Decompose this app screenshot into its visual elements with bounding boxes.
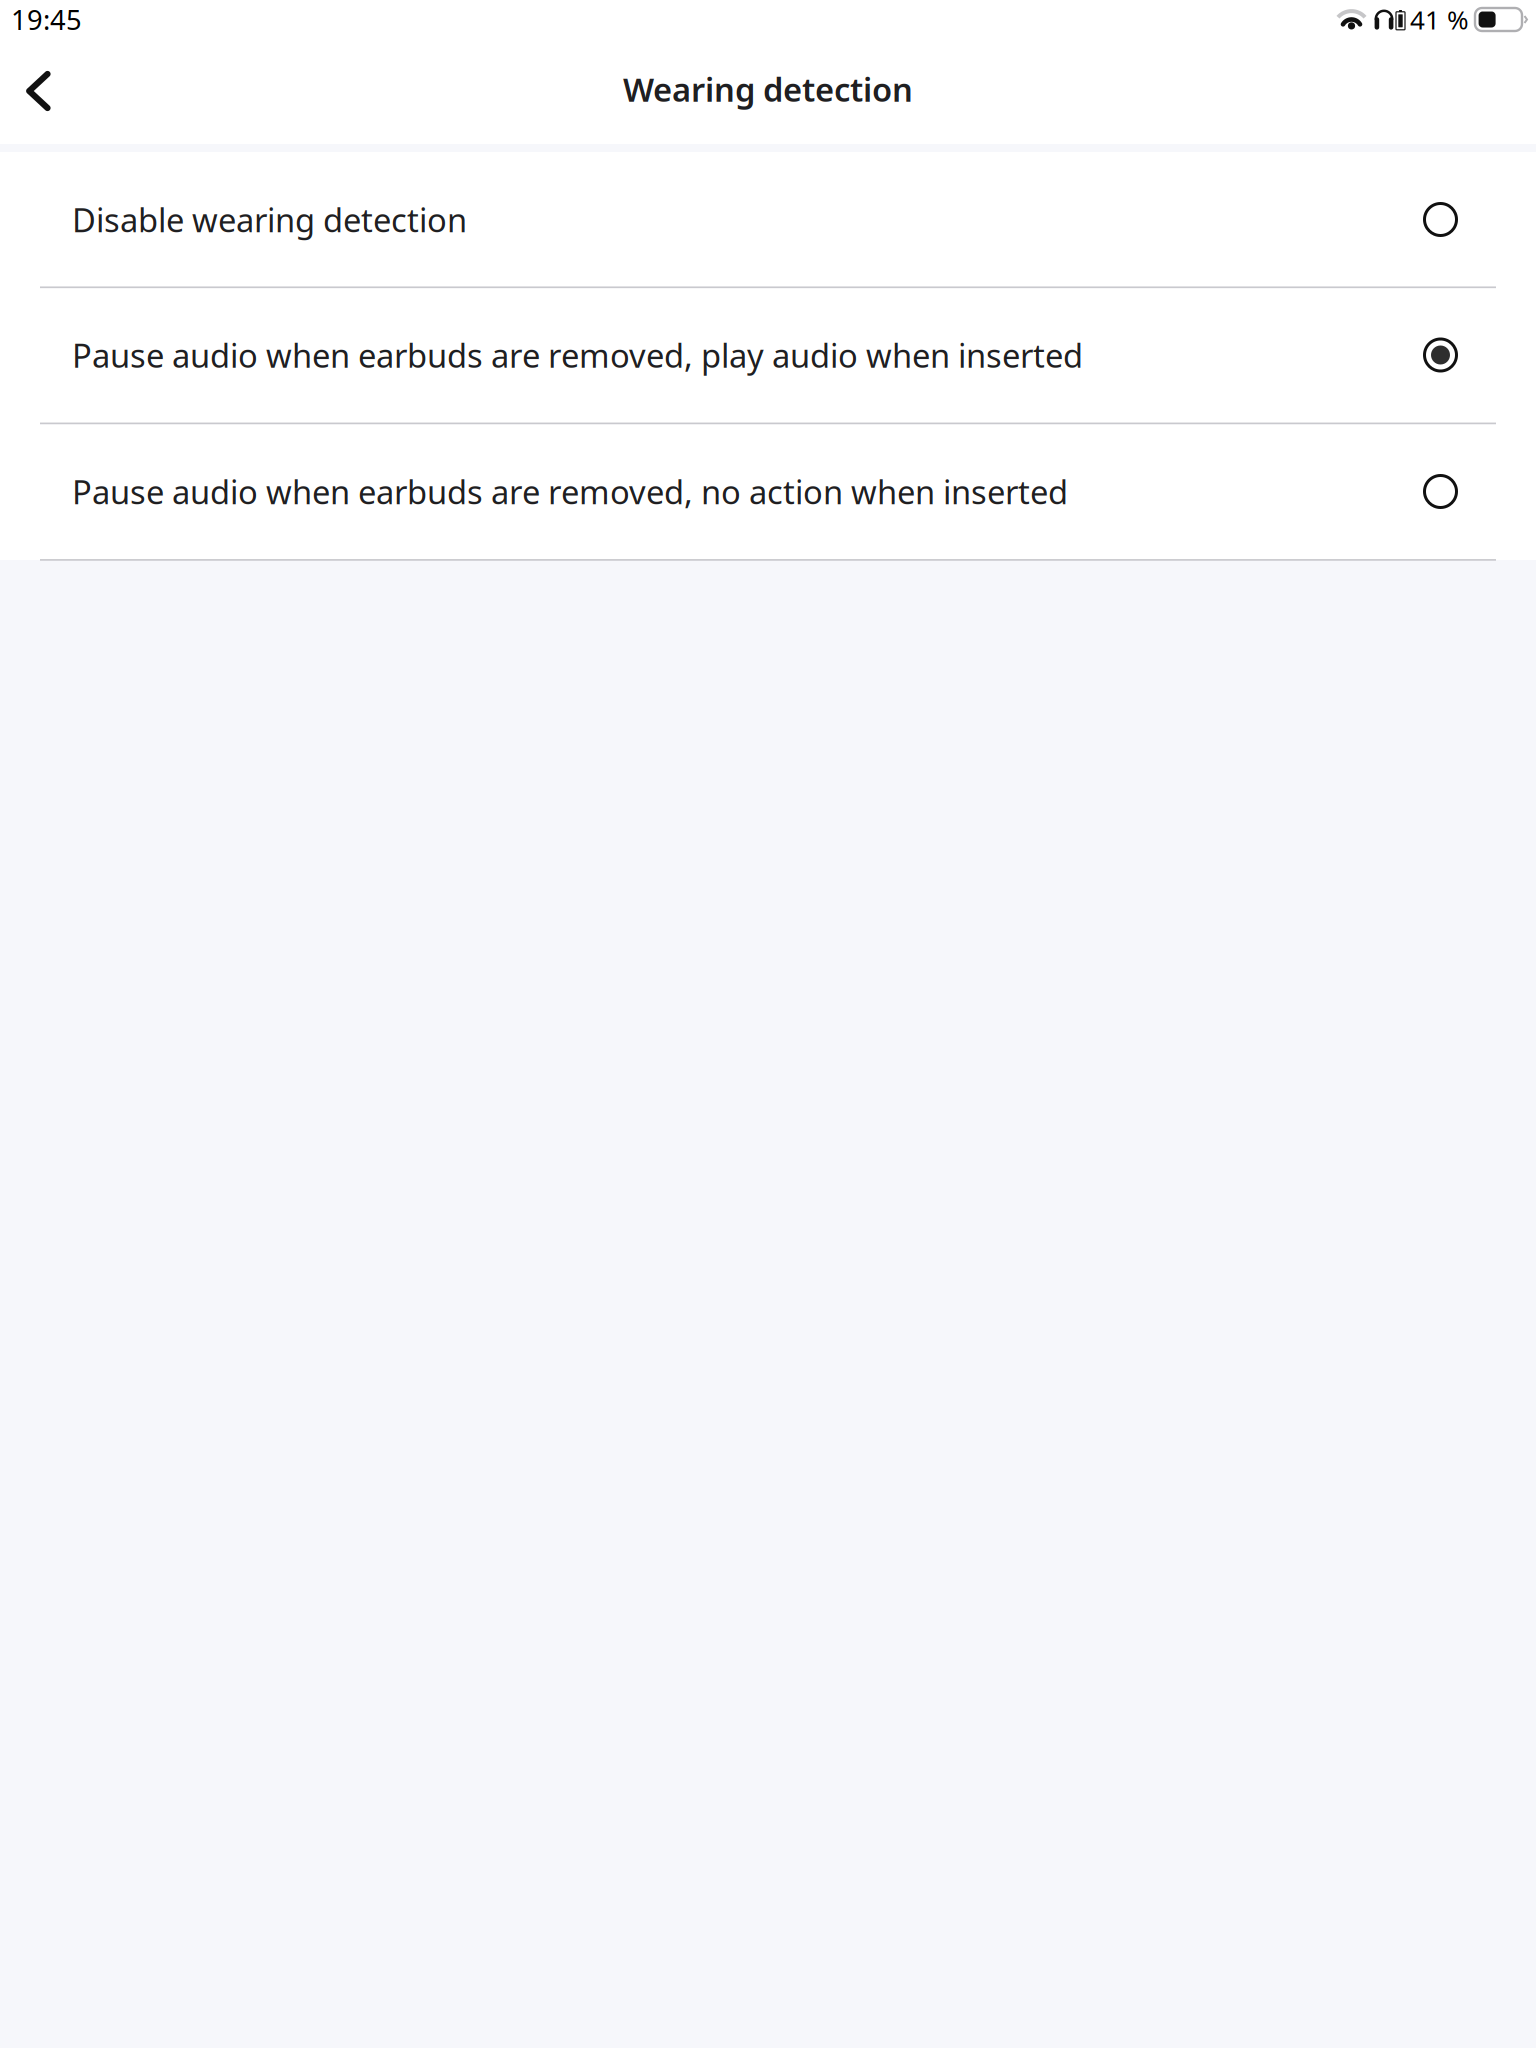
- button[interactable]: Disable wearing detection: [0, 152, 1536, 287]
- staticText: 19:45: [11, 1, 82, 38]
- staticText: Wearing detection: [623, 67, 913, 111]
- staticText: Pause audio when earbuds are removed, no…: [72, 469, 1068, 514]
- staticText: Pause audio when earbuds are removed, pl…: [72, 333, 1083, 377]
- staticText: Disable wearing detection: [72, 197, 467, 242]
- staticText: 41 %: [1410, 2, 1469, 37]
- button[interactable]: Pause audio when earbuds are removed, pl…: [0, 287, 1536, 423]
- button[interactable]: Back: [0, 59, 69, 131]
- button[interactable]: Pause audio when earbuds are removed, no…: [0, 423, 1536, 560]
